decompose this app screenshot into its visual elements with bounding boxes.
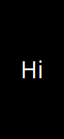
staticText: Hi bbox=[20, 54, 43, 84]
